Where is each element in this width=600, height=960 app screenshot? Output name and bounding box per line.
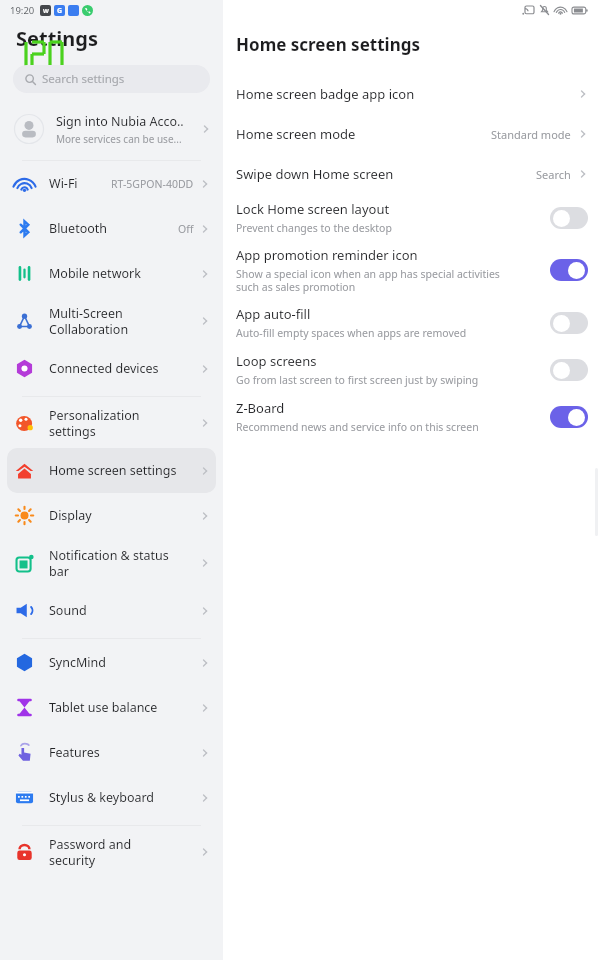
staticText: Connected devices	[49, 360, 200, 377]
staticText: Home screen settings	[236, 33, 420, 56]
staticText: Wi-Fi	[49, 175, 111, 192]
staticText: App auto-fill	[236, 305, 311, 323]
staticText: Notification & status bar	[49, 547, 200, 579]
staticText: 19:20	[10, 4, 35, 17]
button[interactable]: Display	[7, 493, 216, 538]
button[interactable]: Stylus & keyboard	[7, 775, 216, 820]
button[interactable]: Swipe down Home screen	[223, 154, 600, 194]
button[interactable]: Sign into Nubia Acco..	[0, 106, 223, 152]
staticText: Stylus & keyboard	[49, 789, 200, 806]
staticText: W	[43, 7, 49, 15]
staticText: App promotion reminder icon	[236, 246, 418, 264]
button[interactable]: Bluetooth	[7, 206, 216, 251]
button[interactable]: Notification & status bar	[7, 538, 216, 588]
staticText: Search	[536, 167, 571, 182]
button[interactable]: Lock Home screen layout	[223, 194, 600, 241]
staticText: SyncMind	[49, 654, 200, 671]
button[interactable]: Toggle off	[550, 312, 588, 334]
button[interactable]: Z-Board	[223, 393, 600, 440]
staticText: Tablet use balance	[49, 699, 200, 716]
button[interactable]: Mobile network	[7, 251, 216, 296]
button[interactable]: Sound	[7, 588, 216, 633]
button[interactable]: Password and security	[7, 827, 216, 877]
button[interactable]: Home screen badge app icon	[223, 74, 600, 114]
button[interactable]: Home screen mode	[223, 114, 600, 154]
staticText: Sound	[49, 602, 200, 619]
staticText: Settings	[16, 25, 98, 52]
button[interactable]: App auto-fill	[223, 299, 600, 346]
staticText: Z-Board	[236, 399, 285, 417]
staticText: Recommend news and service info on this …	[236, 420, 479, 434]
button[interactable]: App promotion reminder icon	[223, 241, 600, 299]
staticText: Home screen settings	[49, 462, 200, 479]
staticText: Personalization settings	[49, 407, 200, 439]
button[interactable]: Loop screens	[223, 346, 600, 393]
button[interactable]: Toggle on	[550, 259, 588, 281]
button[interactable]: Toggle on	[550, 406, 588, 428]
button[interactable]: Tablet use balance	[7, 685, 216, 730]
staticText: Search settings	[42, 71, 125, 87]
staticText: Sign into Nubia Acco..	[56, 113, 184, 130]
staticText: Prevent changes to the desktop	[236, 221, 392, 235]
staticText: Swipe down Home screen	[236, 165, 394, 183]
staticText: Mobile network	[49, 265, 200, 282]
staticText: Bluetooth	[49, 220, 178, 237]
button[interactable]: Connected devices	[7, 346, 216, 391]
staticText: Lock Home screen layout	[236, 200, 390, 218]
staticText: Go from last screen to first screen just…	[236, 373, 479, 387]
staticText: Show a special icon when an app has spec…	[236, 267, 500, 294]
staticText: Home screen mode	[236, 125, 356, 143]
staticText: More services can be use...	[56, 132, 182, 146]
button[interactable]: Wi-Fi	[7, 161, 216, 206]
staticText: Standard mode	[491, 127, 571, 142]
staticText: Display	[49, 507, 200, 524]
staticText: Off	[178, 222, 194, 236]
staticText: G	[57, 6, 63, 16]
staticText: RT-5GPON-40DD	[111, 177, 194, 191]
button[interactable]: Features	[7, 730, 216, 775]
button[interactable]: Toggle off	[550, 207, 588, 229]
staticText: Password and security	[49, 836, 200, 868]
button[interactable]: Search settings	[13, 65, 210, 93]
staticText: Features	[49, 744, 200, 761]
button[interactable]: Home screen settings	[7, 448, 216, 493]
staticText: Auto-fill empty spaces when apps are rem…	[236, 326, 467, 340]
button[interactable]: Personalization settings	[7, 398, 216, 448]
button[interactable]: Toggle off	[550, 359, 588, 381]
staticText: Multi-Screen Collaboration	[49, 305, 200, 337]
staticText: Home screen badge app icon	[236, 85, 415, 103]
staticText: Loop screens	[236, 352, 317, 370]
button[interactable]: SyncMind	[7, 640, 216, 685]
button[interactable]: Multi-Screen Collaboration	[7, 296, 216, 346]
